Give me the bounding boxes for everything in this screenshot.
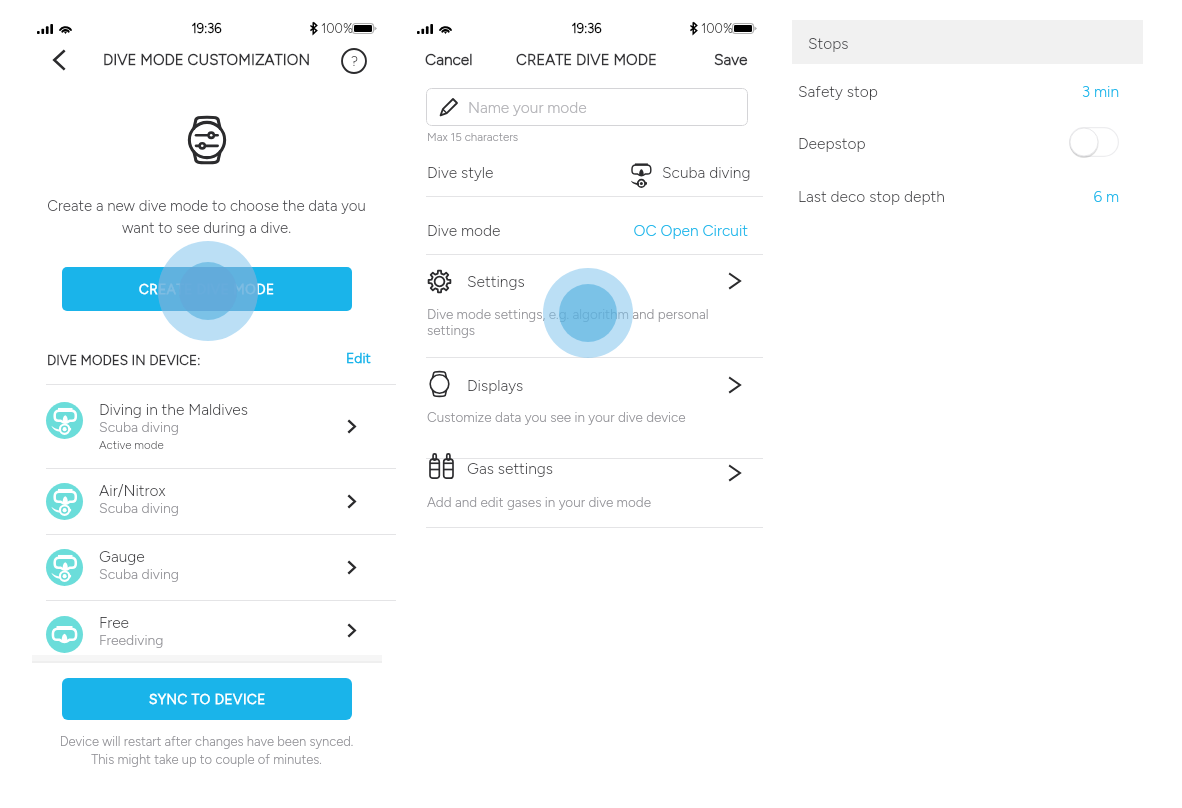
staticText: DIVE MODES IN DEVICE: bbox=[47, 352, 201, 368]
staticText: 100% bbox=[701, 21, 733, 37]
staticText: Freediving bbox=[99, 632, 164, 649]
staticText: Deepstop bbox=[798, 134, 866, 153]
staticText: Customize data you see in your dive devi… bbox=[427, 409, 686, 425]
staticText: Name your mode bbox=[468, 98, 587, 117]
button[interactable]: Save bbox=[706, 46, 748, 72]
staticText: CREATE DIVE MODE bbox=[139, 281, 275, 297]
staticText: Safety stop bbox=[798, 82, 878, 101]
staticText: Device will restart after changes have b… bbox=[31, 734, 382, 767]
staticText: 19:36 bbox=[411, 21, 762, 37]
staticText: Stops bbox=[808, 34, 849, 53]
button[interactable] bbox=[411, 459, 762, 527]
staticText: CREATE DIVE MODE bbox=[411, 51, 762, 69]
button[interactable] bbox=[426, 88, 748, 126]
button[interactable] bbox=[792, 170, 1143, 222]
staticText: 100% bbox=[321, 21, 353, 37]
staticText: Scuba diving bbox=[99, 419, 179, 436]
staticText: Dive style bbox=[427, 163, 494, 182]
button[interactable]: Edit bbox=[331, 347, 371, 369]
button[interactable]: CREATE DIVE MODE bbox=[62, 267, 352, 311]
staticText: Displays bbox=[467, 376, 524, 395]
staticText: Free bbox=[99, 613, 130, 632]
staticText: Create a new dive mode to choose the dat… bbox=[31, 197, 382, 236]
staticText: DIVE MODE CUSTOMIZATION bbox=[31, 51, 382, 69]
button[interactable] bbox=[411, 255, 762, 357]
button[interactable]: SYNC TO DEVICE bbox=[62, 678, 352, 720]
staticText: OC Open Circuit bbox=[511, 221, 748, 240]
staticText: Add and edit gases in your dive mode bbox=[427, 494, 652, 510]
staticText: Diving in the Maldives bbox=[99, 400, 249, 419]
staticText: ? bbox=[351, 53, 358, 70]
staticText: SYNC TO DEVICE bbox=[149, 691, 266, 707]
button[interactable] bbox=[32, 534, 382, 600]
staticText: Scuba diving bbox=[99, 566, 179, 583]
staticText: Last deco stop depth bbox=[798, 187, 945, 206]
staticText: Gas settings bbox=[467, 459, 554, 478]
button[interactable] bbox=[32, 468, 382, 534]
button[interactable]: Back bbox=[43, 44, 75, 76]
staticText: 19:36 bbox=[31, 21, 382, 37]
staticText: Active mode bbox=[99, 438, 164, 452]
button[interactable] bbox=[792, 116, 1143, 170]
staticText: Dive mode bbox=[427, 221, 501, 240]
button[interactable]: Help bbox=[338, 45, 370, 77]
staticText: Scuba diving bbox=[662, 163, 751, 182]
button[interactable] bbox=[411, 358, 762, 458]
staticText: Edit bbox=[346, 350, 371, 367]
staticText: Scuba diving bbox=[99, 500, 179, 517]
staticText: Cancel bbox=[425, 50, 473, 69]
button[interactable]: Deepstop toggle bbox=[1069, 127, 1119, 157]
staticText: Gauge bbox=[99, 547, 145, 566]
staticText: Max 15 characters bbox=[427, 130, 519, 144]
staticText: 3 min bbox=[892, 82, 1119, 101]
staticText: Air/Nitrox bbox=[99, 481, 166, 500]
button[interactable] bbox=[32, 600, 382, 660]
button[interactable]: Cancel bbox=[425, 46, 487, 72]
staticText: 6 m bbox=[892, 187, 1119, 206]
button[interactable] bbox=[32, 384, 382, 468]
staticText: Settings bbox=[467, 272, 525, 291]
staticText: Dive mode settings, e.g. algorithm and p… bbox=[427, 306, 709, 339]
button[interactable] bbox=[411, 197, 762, 254]
staticText: Save bbox=[714, 50, 748, 69]
button[interactable] bbox=[792, 64, 1143, 116]
button[interactable] bbox=[411, 150, 762, 196]
